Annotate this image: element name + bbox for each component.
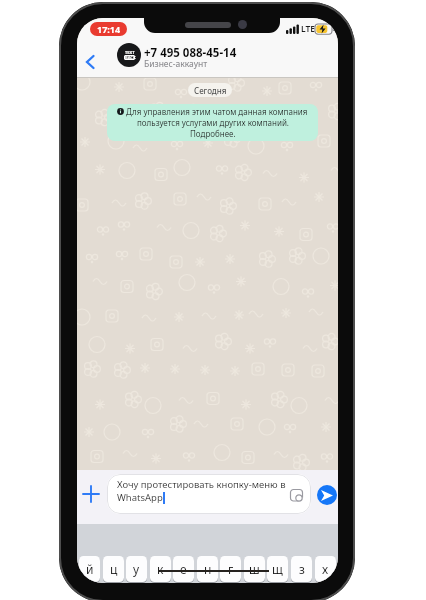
staticText: ц	[110, 561, 118, 577]
button[interactable]: TEXT	[117, 43, 141, 67]
button[interactable]	[317, 485, 337, 505]
button[interactable]: н	[197, 556, 218, 582]
button[interactable]: к	[150, 556, 171, 582]
staticText: г	[228, 561, 234, 577]
button[interactable]: Хочу протестировать кнопку-меню в	[107, 474, 311, 514]
staticText: пользуется услугами других компаний.	[137, 117, 289, 128]
button[interactable]: щ	[267, 556, 288, 582]
button[interactable]: х	[315, 556, 336, 582]
staticText: к	[157, 561, 164, 577]
staticText: Бизнес-аккаунт	[144, 58, 208, 70]
staticText: +7 495 088-45-14	[144, 45, 237, 61]
staticText: ш	[249, 561, 260, 577]
button[interactable]: ц	[103, 556, 124, 582]
button[interactable]	[79, 50, 103, 74]
button[interactable]: 17:14	[90, 22, 127, 36]
button[interactable]: ш	[244, 556, 265, 582]
staticText: х	[322, 561, 329, 577]
staticText: е	[180, 561, 187, 577]
button[interactable]: Для управления этим чатом данная компани…	[107, 104, 318, 141]
button[interactable]: з	[291, 556, 312, 582]
button[interactable]: й	[79, 556, 100, 582]
staticText: LTE	[301, 23, 316, 35]
staticText: щ	[272, 561, 283, 577]
button[interactable]	[81, 484, 101, 504]
staticText: Подробнее.	[190, 128, 236, 139]
staticText: й	[86, 561, 94, 577]
staticText: Для управления этим чатом данная компани…	[126, 106, 308, 117]
button[interactable]: г	[220, 556, 241, 582]
staticText: BACK	[125, 55, 136, 60]
staticText: 17:14	[97, 23, 121, 35]
staticText: WhatsApp	[117, 491, 163, 504]
staticText: Хочу протестировать кнопку-меню в	[117, 478, 286, 491]
staticText: з	[299, 561, 305, 577]
staticText: TEXT	[125, 50, 135, 55]
button[interactable]: у	[126, 556, 147, 582]
staticText: н	[204, 561, 212, 577]
staticText: Сегодня	[194, 85, 227, 96]
staticText: у	[133, 561, 140, 577]
button[interactable]: е	[173, 556, 194, 582]
